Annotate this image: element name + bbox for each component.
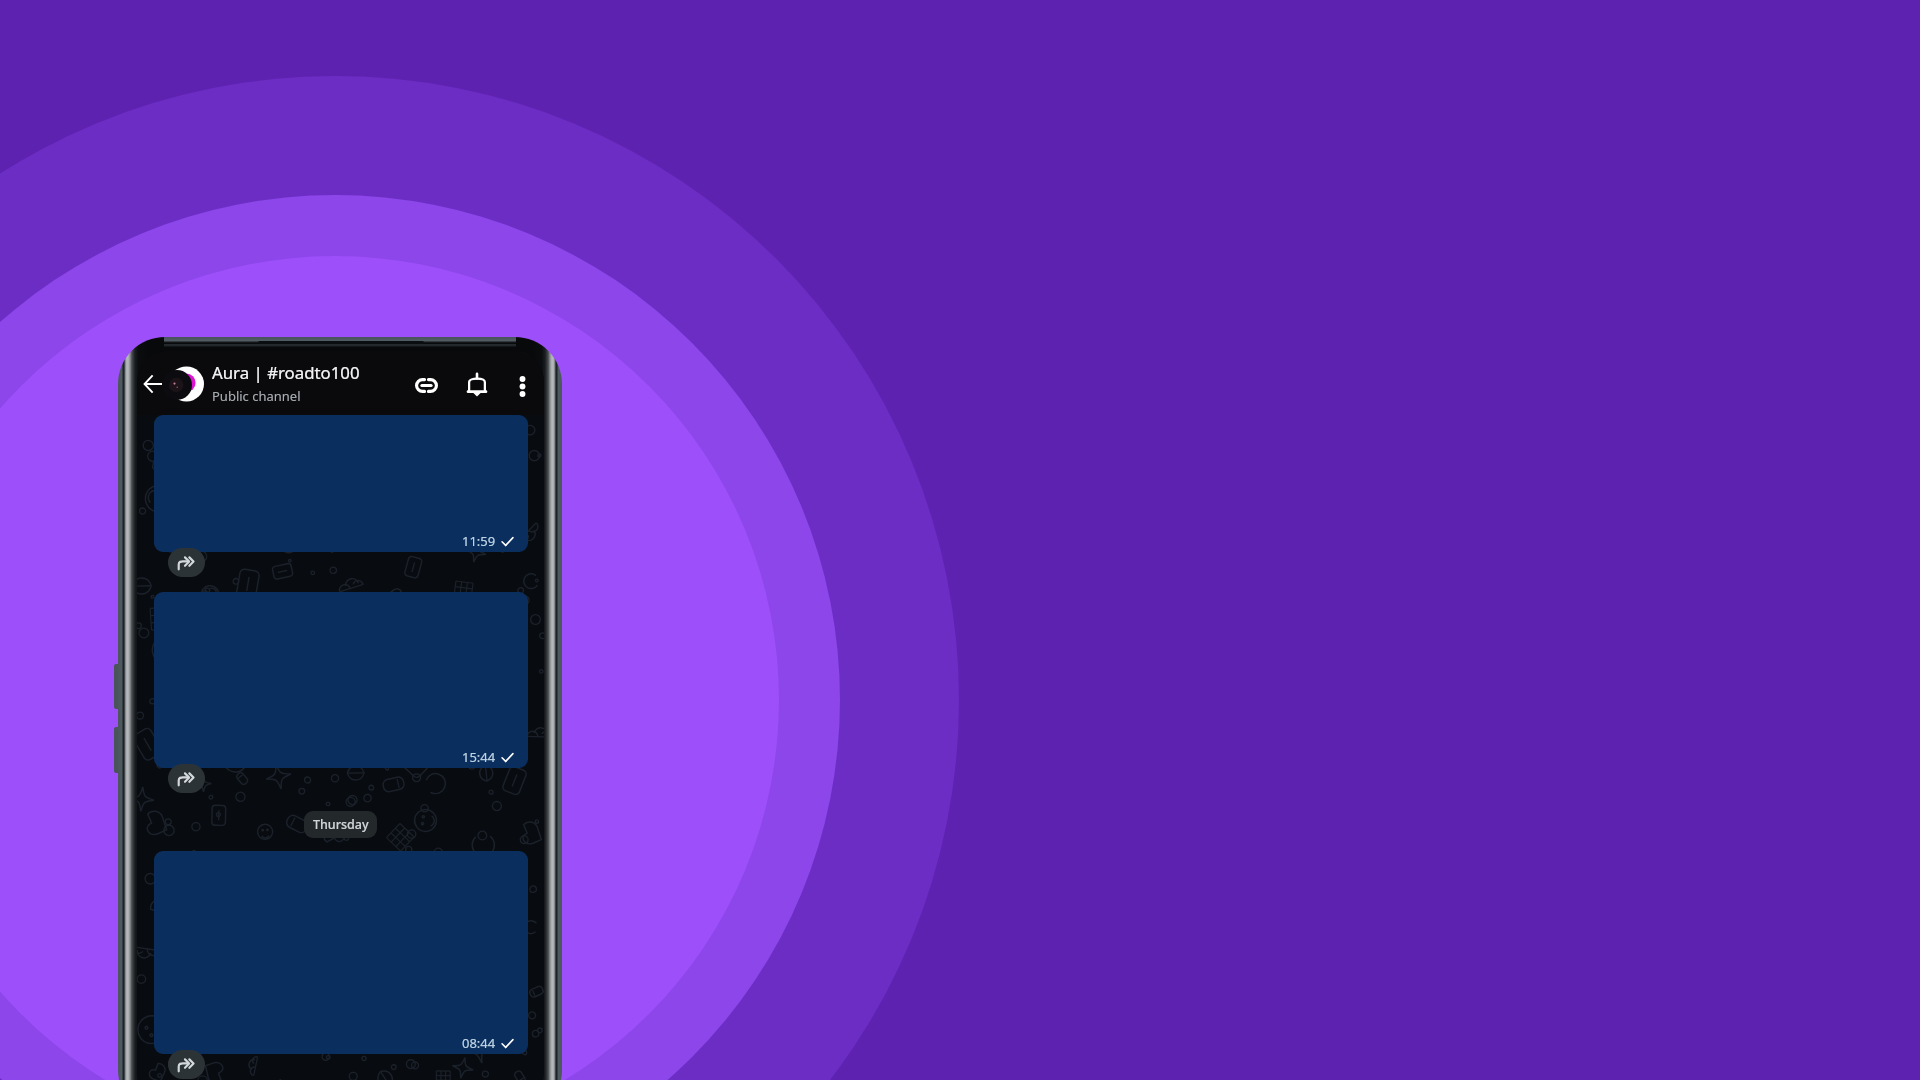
staticText: Aura | #roadto100 — [212, 361, 360, 384]
button[interactable]: Forward — [168, 764, 205, 793]
button[interactable]: Back — [137, 368, 169, 400]
staticText: 08:44 — [462, 1034, 496, 1052]
button[interactable]: More options — [506, 370, 538, 402]
staticText: Public channel — [212, 387, 301, 405]
button[interactable]: Forward — [168, 548, 205, 577]
button[interactable]: 08:44 — [154, 851, 528, 1054]
staticText: 15:44 — [462, 748, 496, 766]
button[interactable]: Copy link — [410, 369, 442, 401]
button[interactable]: Forward — [168, 1050, 205, 1079]
staticText: 11:59 — [462, 532, 496, 550]
button[interactable]: 15:44 — [154, 592, 528, 768]
staticText: Thursday — [313, 816, 369, 833]
button[interactable]: Thursday — [304, 811, 377, 838]
button[interactable]: Notifications — [461, 369, 493, 401]
button[interactable]: 11:59 — [154, 415, 528, 552]
